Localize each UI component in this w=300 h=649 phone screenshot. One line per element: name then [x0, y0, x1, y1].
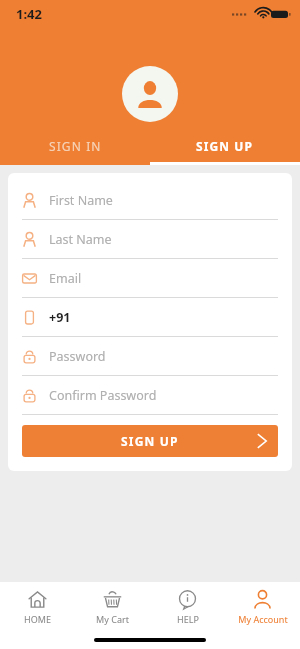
staticText: SIGN UP: [196, 138, 254, 154]
button[interactable]: Confirm Password: [22, 376, 278, 415]
staticText: SIGN UP: [121, 433, 179, 449]
staticText: Last Name: [49, 231, 112, 248]
button[interactable]: HOME: [0, 590, 75, 625]
button[interactable]: My Account: [225, 590, 300, 625]
staticText: HELP: [177, 613, 199, 625]
staticText: My Cart: [96, 613, 129, 625]
staticText: Confirm Password: [49, 387, 157, 404]
button[interactable]: Password: [22, 337, 278, 376]
button[interactable]: +91: [22, 298, 278, 337]
button[interactable]: First Name: [22, 181, 278, 220]
button[interactable]: Email: [22, 259, 278, 298]
button[interactable]: SIGN UP: [22, 425, 278, 457]
staticText: First Name: [49, 192, 113, 209]
button[interactable]: HELP: [150, 590, 225, 625]
staticText: Email: [49, 270, 82, 287]
staticText: Password: [49, 348, 106, 365]
staticText: 1:42: [16, 5, 42, 23]
staticText: My Account: [238, 613, 288, 625]
staticText: SIGN IN: [49, 138, 102, 154]
button[interactable]: My Cart: [75, 590, 150, 625]
staticText: HOME: [24, 613, 51, 625]
button[interactable]: SIGN UP: [150, 127, 300, 165]
button[interactable]: SIGN IN: [0, 127, 150, 165]
button[interactable]: Last Name: [22, 220, 278, 259]
staticText: +91: [49, 309, 71, 326]
